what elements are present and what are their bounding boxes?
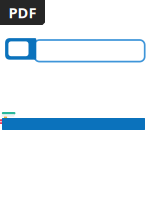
button[interactable]: Page [5, 38, 36, 60]
button[interactable]: Address field [34, 40, 145, 62]
staticText: PDF [8, 3, 36, 22]
button[interactable]: PDF document [0, 0, 45, 25]
